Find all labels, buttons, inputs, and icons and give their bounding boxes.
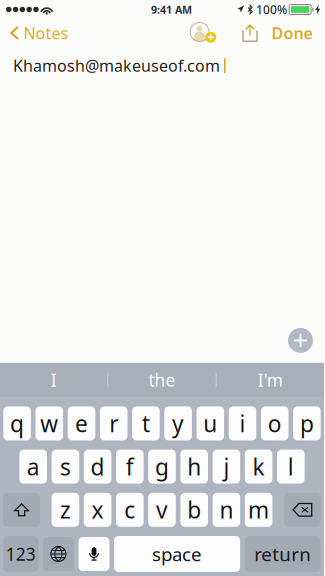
button[interactable]: Add People	[188, 19, 218, 47]
button[interactable]: Next Keyboard	[43, 537, 74, 571]
button[interactable]: t	[132, 406, 160, 440]
button[interactable]: i	[229, 406, 256, 440]
staticText: s	[60, 451, 71, 482]
staticText: n	[219, 495, 233, 525]
button[interactable]: the	[108, 363, 216, 397]
staticText: c	[124, 495, 135, 525]
button[interactable]: Add attachment	[288, 328, 313, 353]
staticText: w	[40, 408, 58, 438]
button[interactable]: I'm	[217, 363, 324, 397]
button[interactable]: f	[116, 450, 144, 484]
button[interactable]: h	[180, 450, 208, 484]
button[interactable]: s	[52, 450, 79, 484]
button[interactable]: a	[19, 450, 47, 484]
button[interactable]: space	[114, 536, 240, 572]
button[interactable]: Dictation	[78, 537, 109, 571]
staticText: a	[27, 451, 40, 482]
staticText: space	[152, 542, 202, 566]
button[interactable]: I	[0, 363, 107, 397]
button[interactable]: Share	[240, 19, 260, 47]
button[interactable]: g	[148, 450, 176, 484]
staticText: I'm	[258, 368, 283, 391]
button[interactable]: return	[245, 536, 321, 572]
staticText: I	[51, 368, 57, 391]
staticText: m	[248, 495, 269, 525]
staticText: Done	[271, 22, 312, 44]
button[interactable]: d	[84, 450, 111, 484]
button[interactable]: 123	[3, 536, 38, 572]
button[interactable]: q	[3, 406, 31, 440]
staticText: t	[142, 408, 150, 438]
staticText: z	[60, 495, 71, 525]
staticText: 123	[6, 542, 36, 565]
button[interactable]: v	[148, 493, 176, 527]
staticText: d	[91, 451, 105, 482]
staticText: y	[172, 408, 184, 438]
staticText: e	[75, 408, 88, 438]
staticText: 100%	[256, 1, 287, 17]
staticText: f	[126, 451, 134, 482]
button[interactable]: j	[213, 450, 240, 484]
button[interactable]: w	[35, 406, 63, 440]
staticText: v	[156, 495, 168, 525]
staticText: Notes	[23, 22, 68, 44]
button[interactable]: Shift	[3, 493, 40, 527]
button[interactable]: e	[68, 406, 95, 440]
button[interactable]: n	[213, 493, 240, 527]
button[interactable]: y	[164, 406, 192, 440]
staticText: 9:41 AM	[151, 2, 192, 17]
button[interactable]: z	[52, 493, 79, 527]
staticText: h	[187, 451, 201, 482]
staticText: o	[268, 408, 282, 438]
button[interactable]: Delete	[284, 493, 321, 527]
button[interactable]: c	[116, 493, 144, 527]
staticText: b	[187, 495, 201, 525]
button[interactable]: x	[84, 493, 111, 527]
button[interactable]: m	[245, 493, 272, 527]
staticText: i	[239, 408, 245, 438]
button[interactable]: k	[245, 450, 272, 484]
button[interactable]: p	[293, 406, 321, 440]
staticText: g	[155, 451, 169, 482]
staticText: u	[203, 408, 217, 438]
staticText: x	[92, 495, 104, 525]
staticText: return	[254, 542, 311, 566]
button[interactable]: Notes	[0, 19, 74, 47]
staticText: the	[148, 368, 175, 391]
staticText: q	[10, 408, 24, 438]
staticText: k	[253, 451, 265, 482]
button[interactable]: o	[261, 406, 288, 440]
staticText: p	[300, 408, 314, 438]
staticText: l	[288, 451, 294, 482]
button[interactable]: l	[277, 450, 305, 484]
staticText: r	[109, 408, 118, 438]
staticText: j	[223, 451, 229, 482]
button[interactable]: Done	[260, 19, 324, 47]
button[interactable]: u	[196, 406, 224, 440]
button[interactable]: b	[180, 493, 208, 527]
button[interactable]: r	[100, 406, 127, 440]
staticText: Khamosh@makeuseof.com	[13, 55, 220, 76]
